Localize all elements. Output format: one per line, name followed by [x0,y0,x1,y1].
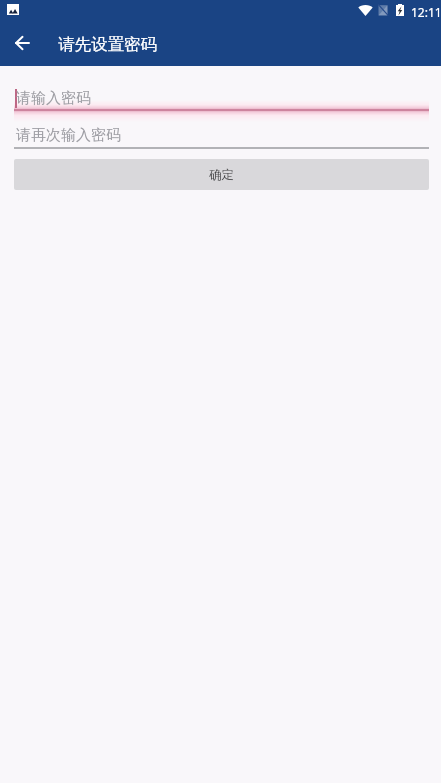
staticText: 请再次输入密码 [16,126,121,145]
staticText: 确定 [209,167,234,183]
staticText: 12:11 [411,4,441,20]
staticText: 请输入密码 [16,89,91,108]
button[interactable]: 请再次输入密码 [14,123,429,149]
button[interactable]: 请输入密码 [14,86,429,112]
button[interactable]: 确定 [14,159,429,190]
staticText: 请先设置密码 [58,34,157,55]
button[interactable]: Back [0,22,44,64]
